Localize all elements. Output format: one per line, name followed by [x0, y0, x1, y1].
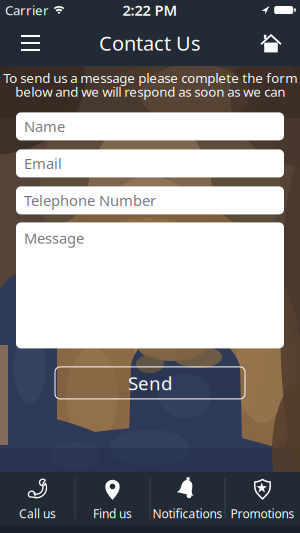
staticText: To send us a message please complete the…	[3, 69, 297, 100]
staticText: Notifications	[152, 505, 222, 521]
staticText: Email	[24, 154, 62, 173]
staticText: Promotions	[230, 505, 294, 521]
staticText: Call us	[19, 505, 56, 521]
staticText: 2:22 PM	[122, 0, 177, 20]
staticText: Find us	[93, 505, 132, 521]
staticText: Carrier	[5, 1, 49, 19]
staticText: Send	[128, 370, 172, 395]
staticText: Name	[24, 117, 65, 136]
button[interactable]: Home	[260, 20, 300, 66]
button[interactable]: Send	[54, 366, 245, 399]
staticText: Contact Us	[99, 30, 201, 56]
button[interactable]: Menu	[0, 21, 40, 65]
staticText: Telephone Number	[24, 191, 156, 210]
button[interactable]: Notifications	[150, 472, 225, 533]
staticText: Message	[24, 228, 84, 248]
button[interactable]: Promotions	[225, 472, 300, 533]
button[interactable]: Find us	[75, 472, 150, 533]
button[interactable]: Call us	[0, 472, 75, 533]
